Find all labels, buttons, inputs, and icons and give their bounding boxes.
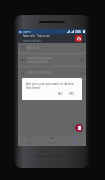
staticText: Share (26, 141, 33, 145)
staticText: Send (48, 141, 55, 145)
button[interactable]: +880 1700 00000 (18, 67, 86, 79)
staticText: 3:06 (75, 30, 82, 34)
button[interactable]: Now calls · Tap to see (18, 34, 86, 43)
button[interactable]: YES (68, 92, 75, 96)
button[interactable]: Stop recording (75, 124, 83, 132)
staticText: https://youtu.be/ (27, 56, 52, 60)
staticText: +880 1700 00000 (27, 71, 52, 75)
staticText: eBrOXpaCiOQ (27, 60, 48, 64)
staticText: recent call info (23, 39, 41, 43)
button[interactable]: Open calls app (75, 35, 82, 42)
staticText: History (70, 141, 79, 145)
button[interactable]: More options (78, 67, 86, 79)
staticText: Now calls · Tap to see (23, 34, 50, 38)
button[interactable]: More options (78, 43, 86, 53)
button[interactable]: NO (57, 92, 64, 96)
button[interactable]: https://youtu.be/ (18, 54, 86, 66)
staticText: NO (58, 92, 63, 96)
button[interactable]: MCC List (18, 43, 86, 53)
staticText: Are you sure you want to delete this ite… (26, 82, 74, 90)
button[interactable]: More options (78, 54, 86, 66)
staticText: YES (69, 92, 74, 96)
button[interactable]: History (63, 135, 86, 146)
staticText: MCC List (27, 46, 40, 50)
